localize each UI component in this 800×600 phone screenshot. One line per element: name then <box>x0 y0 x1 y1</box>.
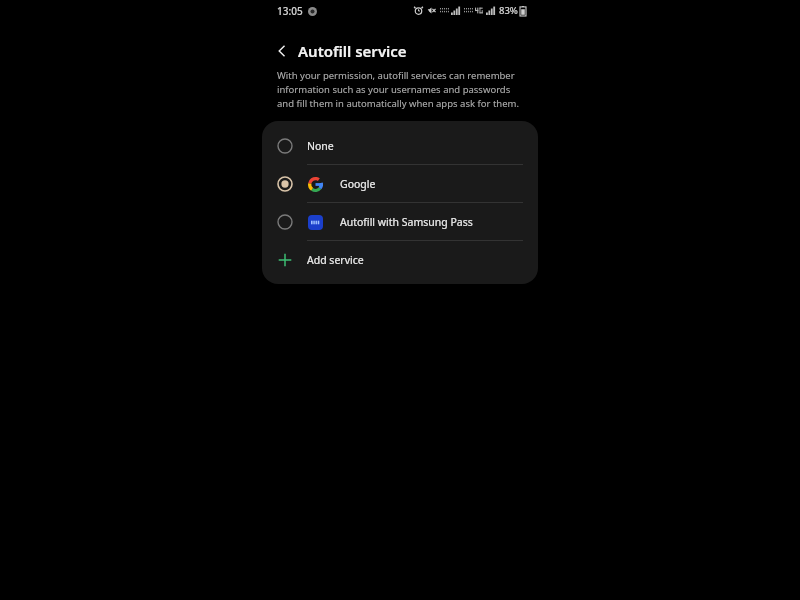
button[interactable]: Google <box>262 165 538 202</box>
button[interactable]: Autofill with Samsung Pass <box>262 203 538 240</box>
other: Add service <box>277 252 293 268</box>
button[interactable]: Add service <box>262 241 538 278</box>
staticText: With your permission, autofill services … <box>277 69 527 110</box>
staticText: Google <box>340 177 376 191</box>
button[interactable]: None <box>262 127 538 164</box>
staticText: None <box>307 139 334 153</box>
staticText: Autofill service <box>298 41 407 61</box>
staticText: Autofill with Samsung Pass <box>340 215 473 229</box>
button[interactable]: Back <box>272 41 292 61</box>
staticText: 13:05 <box>277 4 303 18</box>
staticText: 83% <box>499 4 518 17</box>
staticText: Add service <box>307 253 364 267</box>
